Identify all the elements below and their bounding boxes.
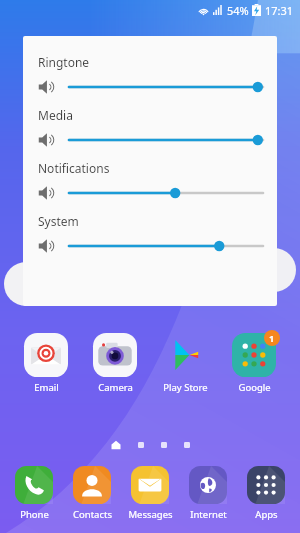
staticText: Apps <box>255 508 278 521</box>
button[interactable]: Contacts <box>64 466 120 521</box>
button[interactable]: Phone <box>6 466 62 521</box>
button[interactable]: Media <box>23 107 277 148</box>
staticText: Email <box>34 381 59 394</box>
staticText: 1 <box>269 332 275 344</box>
staticText: Contacts <box>73 508 112 521</box>
staticText: System <box>38 213 79 229</box>
staticText: 17:31 <box>265 3 294 18</box>
button[interactable]: Play Store <box>154 333 216 394</box>
staticText: Messages <box>128 508 173 521</box>
button[interactable]: Messages <box>122 466 178 521</box>
button[interactable]: Camera <box>84 333 146 394</box>
staticText: Ringtone <box>38 54 90 70</box>
button[interactable]: Email <box>15 333 77 394</box>
staticText: Phone <box>20 508 49 521</box>
button[interactable]: Internet <box>180 466 236 521</box>
staticText: Internet <box>190 508 227 521</box>
button[interactable]: Apps <box>238 466 294 521</box>
button[interactable]: Ringtone <box>23 54 277 95</box>
button[interactable]: System <box>23 213 277 254</box>
staticText: Play Store <box>163 381 208 394</box>
button[interactable]: Notifications <box>23 160 277 201</box>
button[interactable]: Google folder <box>223 333 285 394</box>
staticText: Google <box>238 381 271 394</box>
staticText: 54% <box>227 3 249 18</box>
staticText: Media <box>38 107 73 123</box>
staticText: Notifications <box>38 160 110 176</box>
staticText: Camera <box>98 381 133 394</box>
